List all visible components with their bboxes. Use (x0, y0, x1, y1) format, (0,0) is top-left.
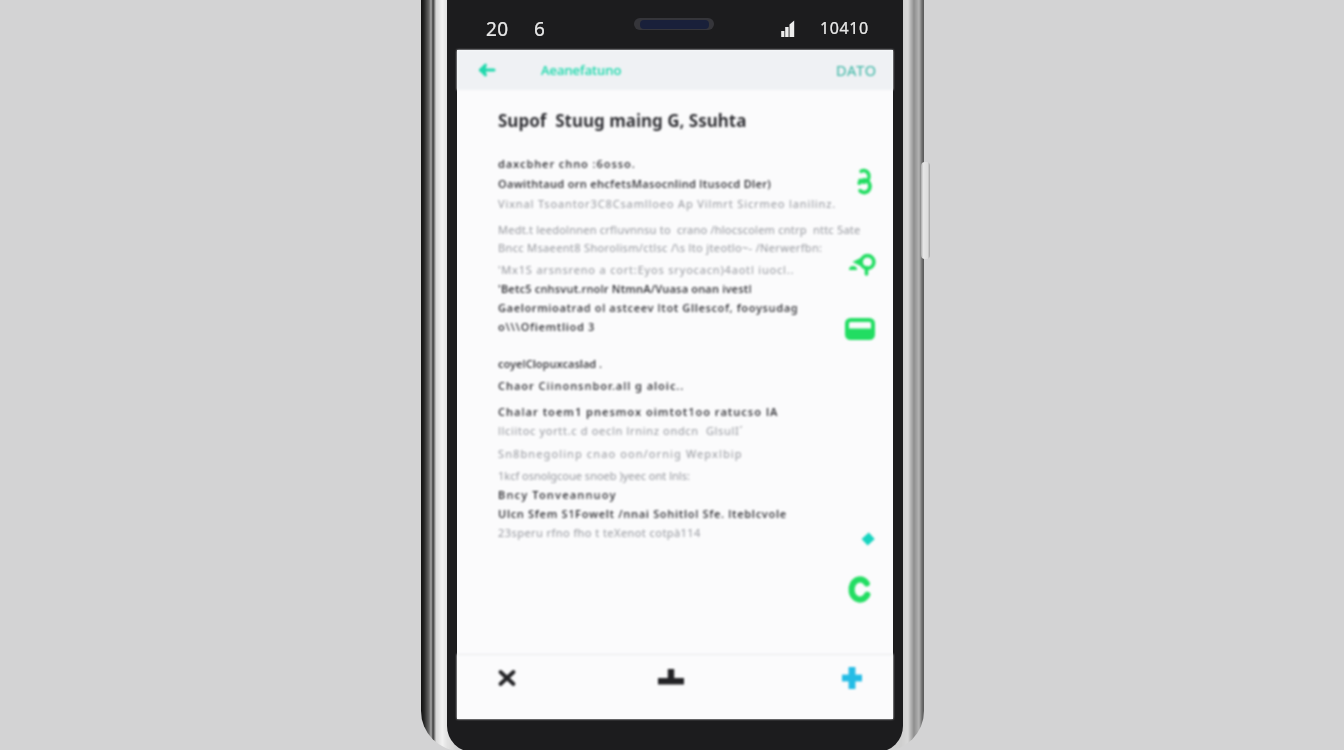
staticText: Ulcn Sfem S1Fowelt /nnai Sohitlol Sfe. l… (498, 506, 787, 521)
button[interactable]: Back (473, 61, 497, 79)
staticText: 6 (534, 16, 545, 42)
staticText: Bncc Msaeent8 Shorolism/ctlsc /\s lto jt… (498, 240, 823, 255)
staticText: Gaelormioatrad ol astceev ltot Gllescof,… (498, 300, 799, 315)
staticText: Vixnal Tsoantor3C8Csamlloeo Ap Vilmrt Si… (498, 196, 837, 211)
staticText: daxcbher chno :6osso. (498, 156, 636, 171)
button[interactable]: Search (847, 255, 877, 279)
button[interactable]: Refresh (848, 577, 872, 601)
button[interactable]: Badge (856, 169, 874, 195)
staticText: coyelClopuxcaslad . (498, 356, 603, 371)
staticText: Chaor Ciinonsnbor.all g aloic.. (498, 378, 685, 393)
button[interactable] (487, 490, 883, 550)
button[interactable]: DATO (833, 57, 880, 83)
button[interactable] (487, 218, 883, 258)
button[interactable] (487, 360, 883, 398)
staticText: llciitoc yortt.c d oecln lrninz ondcn Gl… (498, 423, 744, 438)
button[interactable] (487, 402, 883, 488)
staticText: o\\\Ofiemtliod 3 (498, 319, 596, 334)
button[interactable]: Tag (860, 531, 876, 547)
button[interactable]: Battery (845, 317, 875, 341)
staticText: 'Mx1S arsnsreno a cort:Eyos sryocacn)4ao… (498, 262, 795, 277)
staticText: Aeanefatuno (541, 61, 622, 79)
button[interactable]: Upload (631, 655, 711, 719)
staticText: 1kcf osnolgcoue snoeb )yeec ont lnls: (498, 468, 690, 483)
staticText: DATO (836, 60, 877, 80)
button[interactable] (487, 260, 883, 338)
staticText: Chalar toem1 pnesmox oimtot1oo ratucso l… (498, 404, 779, 419)
staticText: Medt.t leedolnnen crfluvnnsu to crano /h… (498, 222, 861, 237)
button[interactable] (487, 152, 883, 212)
staticText: Oawithtaud orn ehcfetsMasocnlind ltusocd… (498, 176, 772, 191)
staticText: 20 (486, 16, 509, 42)
staticText: 10410 (820, 17, 869, 39)
staticText: Bncy Tonveannuoy (498, 487, 617, 502)
button[interactable]: Close (467, 655, 547, 719)
staticText: Supof Stuug maing G, Ssuhta (498, 109, 747, 132)
button[interactable]: Add (812, 655, 892, 719)
staticText: 'Betc5 cnhsvut.rnolr NtmnA/Vuasa onan iv… (498, 281, 752, 296)
staticText: 23speru rfno fho t teXenot cotpà114 (498, 525, 701, 540)
staticText: Sn8bnegolinp cnao oon/ornig Wepxlbip (498, 446, 743, 461)
